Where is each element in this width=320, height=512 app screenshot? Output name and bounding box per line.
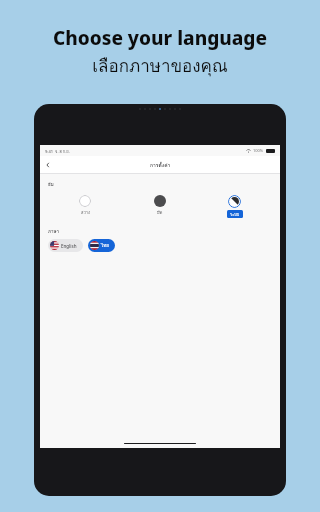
button[interactable]: ไทย: [88, 239, 115, 252]
staticText: ระบบ: [230, 211, 240, 217]
button[interactable]: English: [48, 239, 83, 252]
staticText: สว่าง: [81, 209, 90, 215]
button[interactable]: Back: [42, 159, 54, 171]
staticText: มืด: [157, 209, 163, 215]
staticText: ไทย: [101, 242, 109, 249]
staticText: Choose your language: [53, 25, 267, 51]
staticText: English: [61, 243, 77, 249]
staticText: เลือกภาษาของคุณ: [92, 52, 228, 79]
staticText: 100%: [253, 148, 264, 153]
staticText: การตั้งค่า: [150, 161, 171, 169]
staticText: ธีม: [48, 181, 54, 188]
button[interactable]: สว่าง: [48, 194, 122, 216]
button[interactable]: ระบบ: [197, 194, 272, 219]
button[interactable]: มืด: [122, 194, 197, 216]
staticText: ภาษา: [48, 228, 59, 235]
staticText: 9:41 จ. 8 ก.ย.: [45, 148, 70, 154]
